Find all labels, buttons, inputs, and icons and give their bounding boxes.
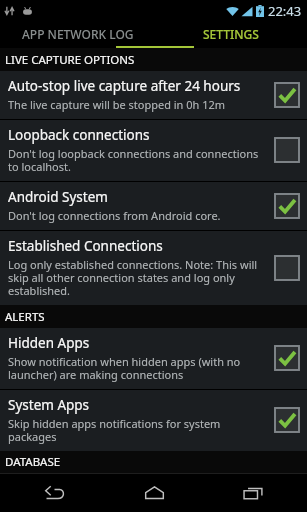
button[interactable]: Recent apps (208, 474, 298, 512)
staticText: Skip hidden apps notifications for syste… (8, 416, 268, 444)
button[interactable]: Loopback connections (0, 120, 307, 181)
staticText: Established Connections (8, 237, 163, 255)
staticText: The live capture will be stopped in 0h 1… (8, 97, 226, 112)
staticText: Don't log loopback connections and conne… (8, 146, 268, 174)
staticText: Android System (8, 188, 108, 206)
button[interactable]: Back (9, 474, 99, 512)
button[interactable]: Established Connections (0, 231, 307, 305)
button[interactable]: Hidden Apps (0, 328, 307, 389)
button[interactable]: Android System (0, 182, 307, 230)
button[interactable]: SETTINGS (155, 21, 307, 46)
staticText: Hidden Apps (8, 334, 90, 352)
staticText: Show notification when hidden apps (with… (8, 354, 268, 382)
staticText: LIVE CAPTURE OPTIONS (5, 52, 135, 68)
button[interactable]: Enabled (274, 345, 300, 371)
button[interactable]: Enabled (274, 407, 300, 433)
staticText: Log only established connections. Note: … (8, 257, 268, 298)
button[interactable]: Disabled (274, 137, 300, 163)
button[interactable]: Enabled (274, 193, 300, 219)
button[interactable]: Enabled (274, 82, 300, 108)
button[interactable]: Auto-stop live capture after 24 hours (0, 71, 307, 119)
staticText: ALERTS (5, 309, 45, 325)
button[interactable]: Disabled (274, 255, 300, 281)
staticText: APP NETWORK LOG (22, 26, 134, 42)
button[interactable]: System Apps (0, 390, 307, 451)
button[interactable]: Home (109, 474, 199, 512)
staticText: Loopback connections (8, 126, 150, 144)
staticText: SETTINGS (203, 26, 259, 42)
staticText: System Apps (8, 396, 90, 414)
button[interactable]: APP NETWORK LOG (0, 21, 155, 46)
staticText: 22:43 (268, 2, 302, 20)
staticText: DATABASE (5, 454, 61, 470)
staticText: Don't log connections from Android core. (8, 208, 221, 223)
staticText: Auto-stop live capture after 24 hours (8, 77, 241, 95)
